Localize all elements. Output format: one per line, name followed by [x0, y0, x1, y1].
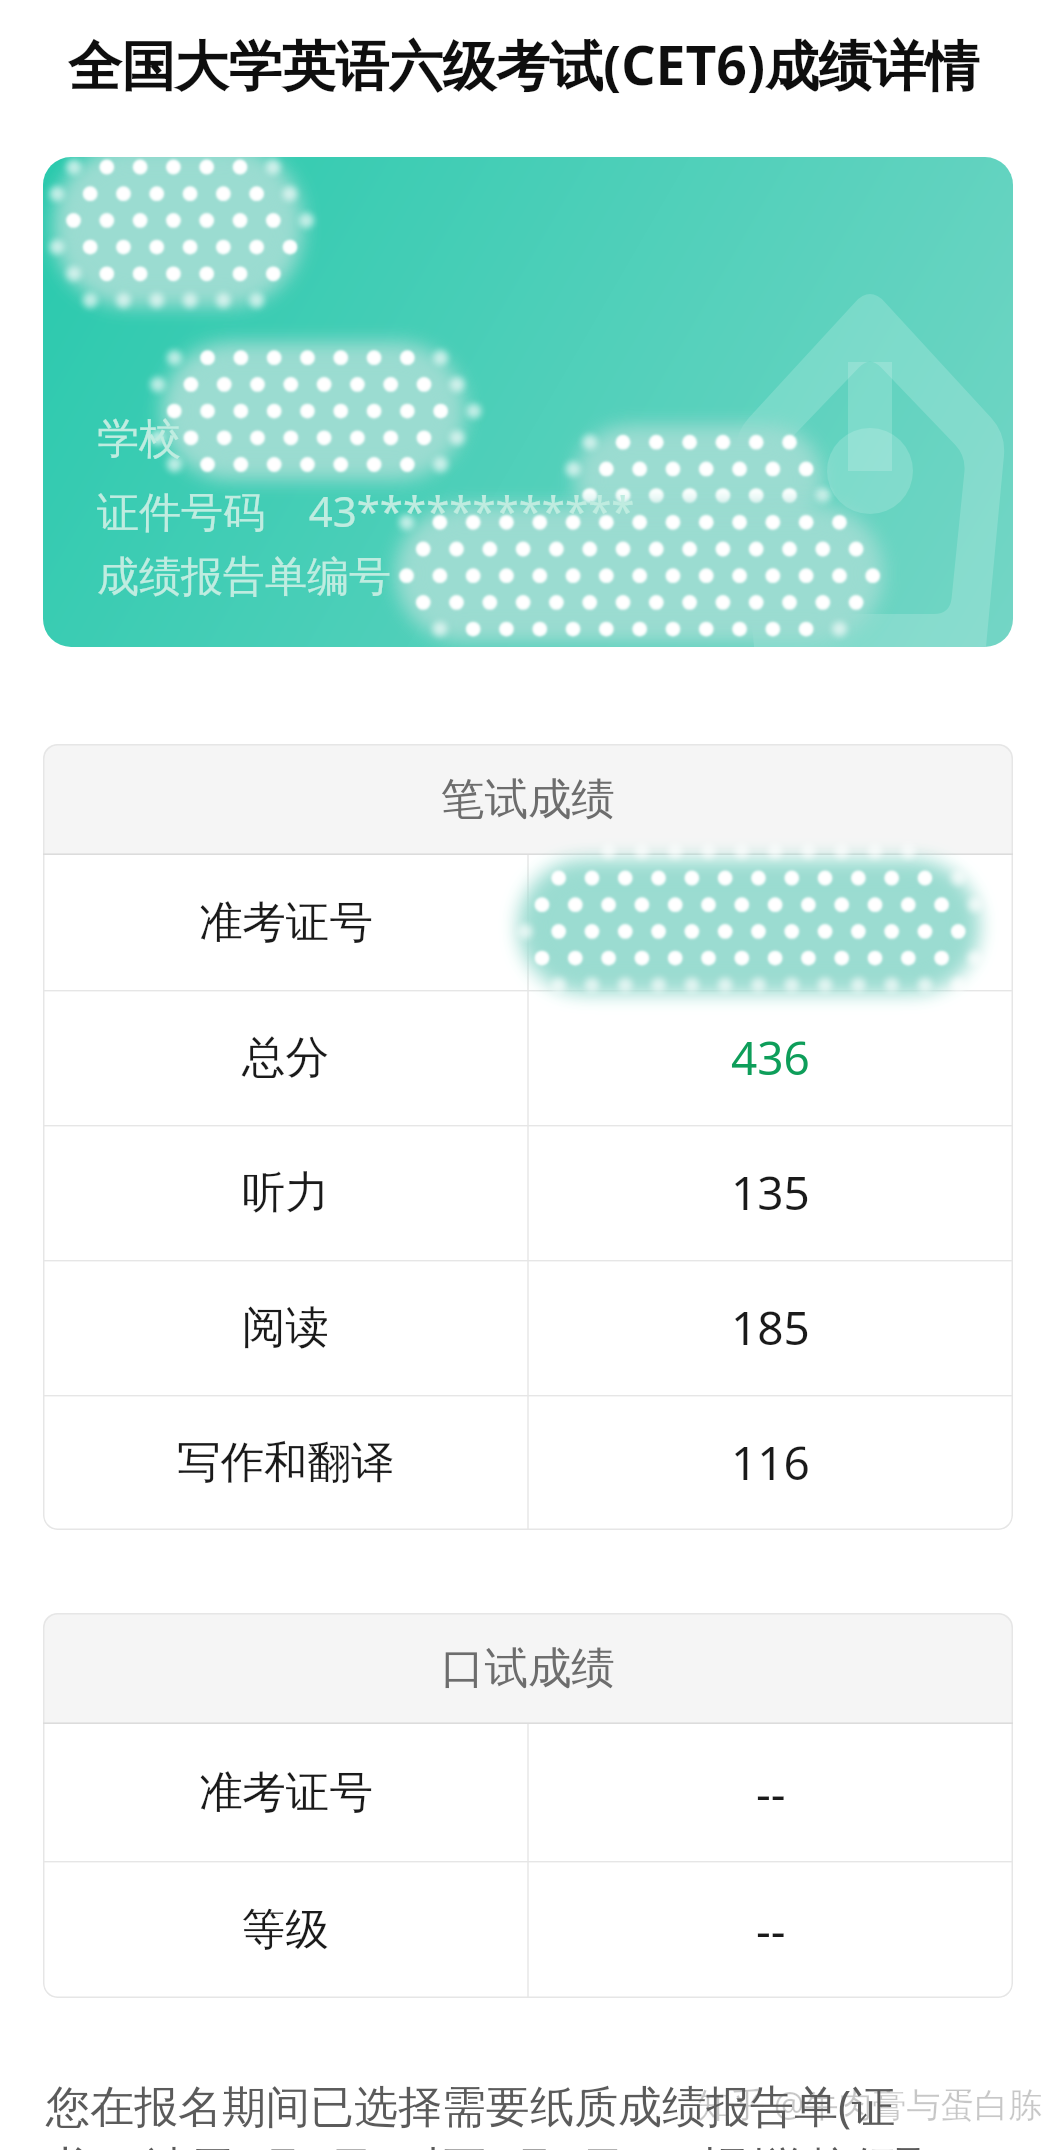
button[interactable]: 阅读 — [43, 1260, 1013, 1395]
button[interactable]: 笔试成绩 — [43, 744, 1013, 855]
button[interactable]: 听力 — [43, 1125, 1013, 1260]
staticText: 准考证号 — [199, 895, 373, 950]
staticText: 全国大学英语六级考试(CET6)成绩详情 — [68, 28, 980, 101]
staticText: 436 — [731, 1026, 810, 1089]
staticText: 学校 — [97, 413, 181, 466]
staticText: 成绩报告单编号 — [97, 551, 391, 604]
staticText: 您在报名期间已选择需要纸质成绩报告单(证 书)，请于3月1日9时至3月7日17时… — [46, 2075, 1046, 2150]
button[interactable]: 等级 — [43, 1861, 1013, 1998]
staticText: 知乎 @牛肉膏与蛋白胨 — [697, 2081, 1043, 2127]
staticText: 写作和翻译 — [177, 1435, 395, 1490]
staticText: 116 — [731, 1431, 810, 1494]
staticText: 185 — [731, 1296, 810, 1359]
staticText: 笔试成绩 — [441, 772, 615, 827]
staticText: 135 — [731, 1161, 810, 1224]
button[interactable]: 学校 — [43, 157, 1013, 647]
button[interactable]: 写作和翻译 — [43, 1395, 1013, 1530]
button[interactable]: 总分 — [43, 990, 1013, 1125]
staticText: 总分 — [242, 1030, 329, 1085]
button[interactable]: 口试成绩 — [43, 1613, 1013, 1724]
staticText: 等级 — [242, 1902, 329, 1957]
staticText: 听力 — [242, 1165, 329, 1220]
button[interactable]: 准考证号 — [43, 1724, 1013, 1861]
staticText: 准考证号 — [199, 1765, 373, 1820]
button[interactable]: 准考证号 — [43, 855, 1013, 990]
staticText: -- — [756, 1761, 786, 1824]
staticText: 阅读 — [242, 1300, 329, 1355]
staticText: 证件号码 43************ — [97, 482, 635, 539]
staticText: 口试成绩 — [441, 1641, 615, 1696]
staticText: -- — [756, 1898, 786, 1961]
